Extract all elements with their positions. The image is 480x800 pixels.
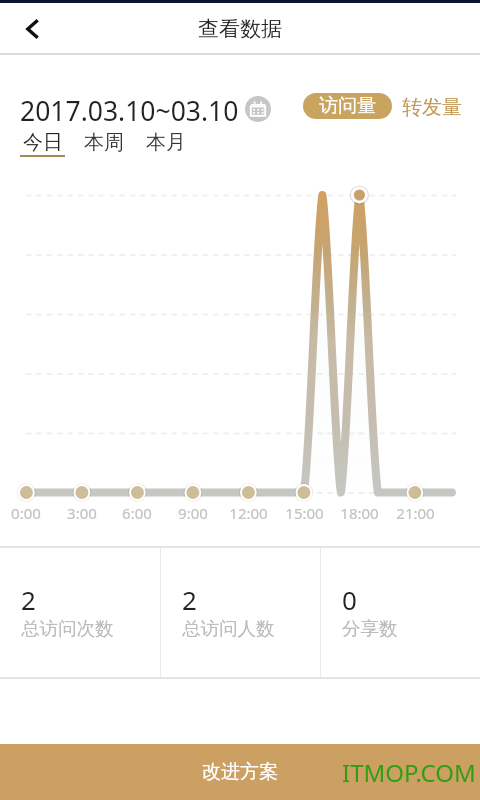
- staticText: 本月: [146, 130, 186, 155]
- staticText: ITMOP.COM: [342, 756, 476, 789]
- button[interactable]: 本周: [81, 130, 126, 157]
- button[interactable]: 转发量: [402, 95, 462, 120]
- staticText: 18:00: [340, 503, 379, 523]
- button[interactable]: Pick date range: [245, 96, 271, 122]
- button[interactable]: 2: [161, 548, 320, 678]
- button[interactable]: 访问量: [303, 93, 392, 119]
- staticText: 改进方案: [202, 760, 278, 784]
- staticText: 15:00: [285, 503, 324, 523]
- button[interactable]: 2: [0, 548, 160, 678]
- staticText: 总访问次数: [21, 617, 114, 640]
- staticText: 本周: [84, 130, 124, 155]
- button[interactable]: 0: [321, 548, 480, 678]
- staticText: 9:00: [178, 503, 208, 523]
- staticText: 2017.03.10~03.10: [20, 93, 239, 129]
- staticText: 总访问人数: [182, 617, 275, 640]
- button[interactable]: 改进方案: [0, 744, 480, 800]
- button[interactable]: 今日: [20, 130, 65, 157]
- staticText: 查看数据: [198, 16, 282, 42]
- staticText: 分享数: [342, 617, 398, 640]
- staticText: 0:00: [11, 503, 41, 523]
- staticText: 访问量: [319, 94, 376, 118]
- staticText: 2: [21, 582, 36, 617]
- staticText: 12:00: [229, 503, 268, 523]
- staticText: 21:00: [396, 503, 435, 523]
- staticText: 6:00: [122, 503, 152, 523]
- staticText: 3:00: [67, 503, 97, 523]
- staticText: 转发量: [402, 95, 462, 120]
- staticText: 2: [182, 582, 197, 617]
- button[interactable]: 本月: [143, 130, 188, 157]
- staticText: 0: [342, 582, 357, 617]
- staticText: 今日: [23, 130, 63, 155]
- button[interactable]: Back: [9, 5, 57, 53]
